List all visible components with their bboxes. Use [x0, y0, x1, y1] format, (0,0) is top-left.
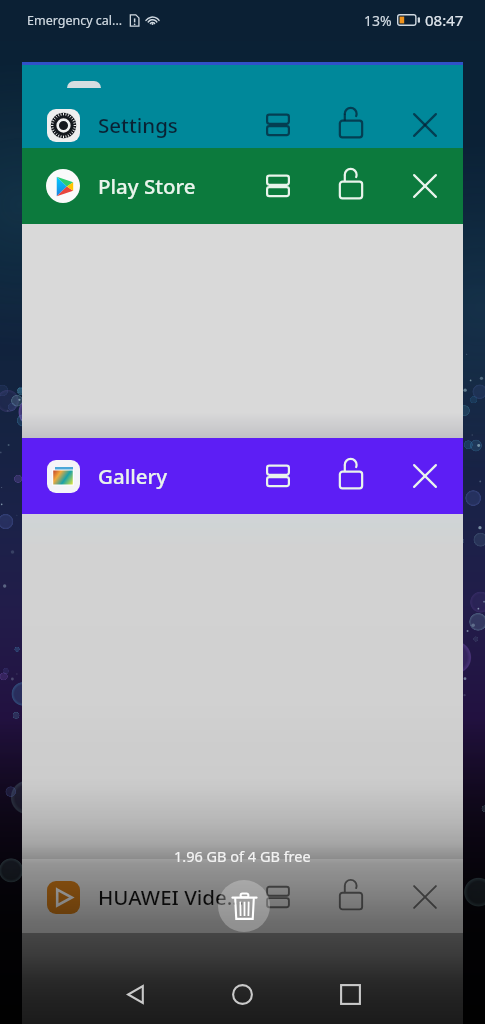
- button[interactable]: Close: [404, 165, 446, 207]
- staticText: Play Store: [98, 172, 196, 200]
- staticText: 08:47: [425, 10, 464, 30]
- button[interactable]: Split screen: [257, 165, 299, 207]
- button[interactable]: Lock: [330, 455, 372, 497]
- button[interactable]: Clear all: [218, 880, 270, 932]
- staticText: Gallery: [98, 462, 167, 490]
- staticText: Settings: [98, 111, 178, 139]
- button[interactable]: Split screen: [257, 876, 299, 918]
- button[interactable]: Split screen: [257, 104, 299, 146]
- staticText: HUAWEI Vide...: [98, 883, 244, 911]
- button[interactable]: Recents: [328, 972, 372, 1016]
- button[interactable]: Close: [404, 876, 446, 918]
- staticText: 1.96 GB of 4 GB free: [174, 846, 311, 866]
- button[interactable]: Back: [114, 972, 158, 1016]
- button[interactable]: Close: [404, 104, 446, 146]
- button[interactable]: Close: [404, 455, 446, 497]
- button[interactable]: Home: [220, 972, 264, 1016]
- button[interactable]: Lock: [330, 165, 372, 207]
- staticText: Emergency cal...: [27, 12, 123, 29]
- staticText: 13%: [364, 11, 392, 30]
- button[interactable]: Split screen: [257, 455, 299, 497]
- button[interactable]: Lock: [330, 876, 372, 918]
- button[interactable]: Lock: [330, 104, 372, 146]
